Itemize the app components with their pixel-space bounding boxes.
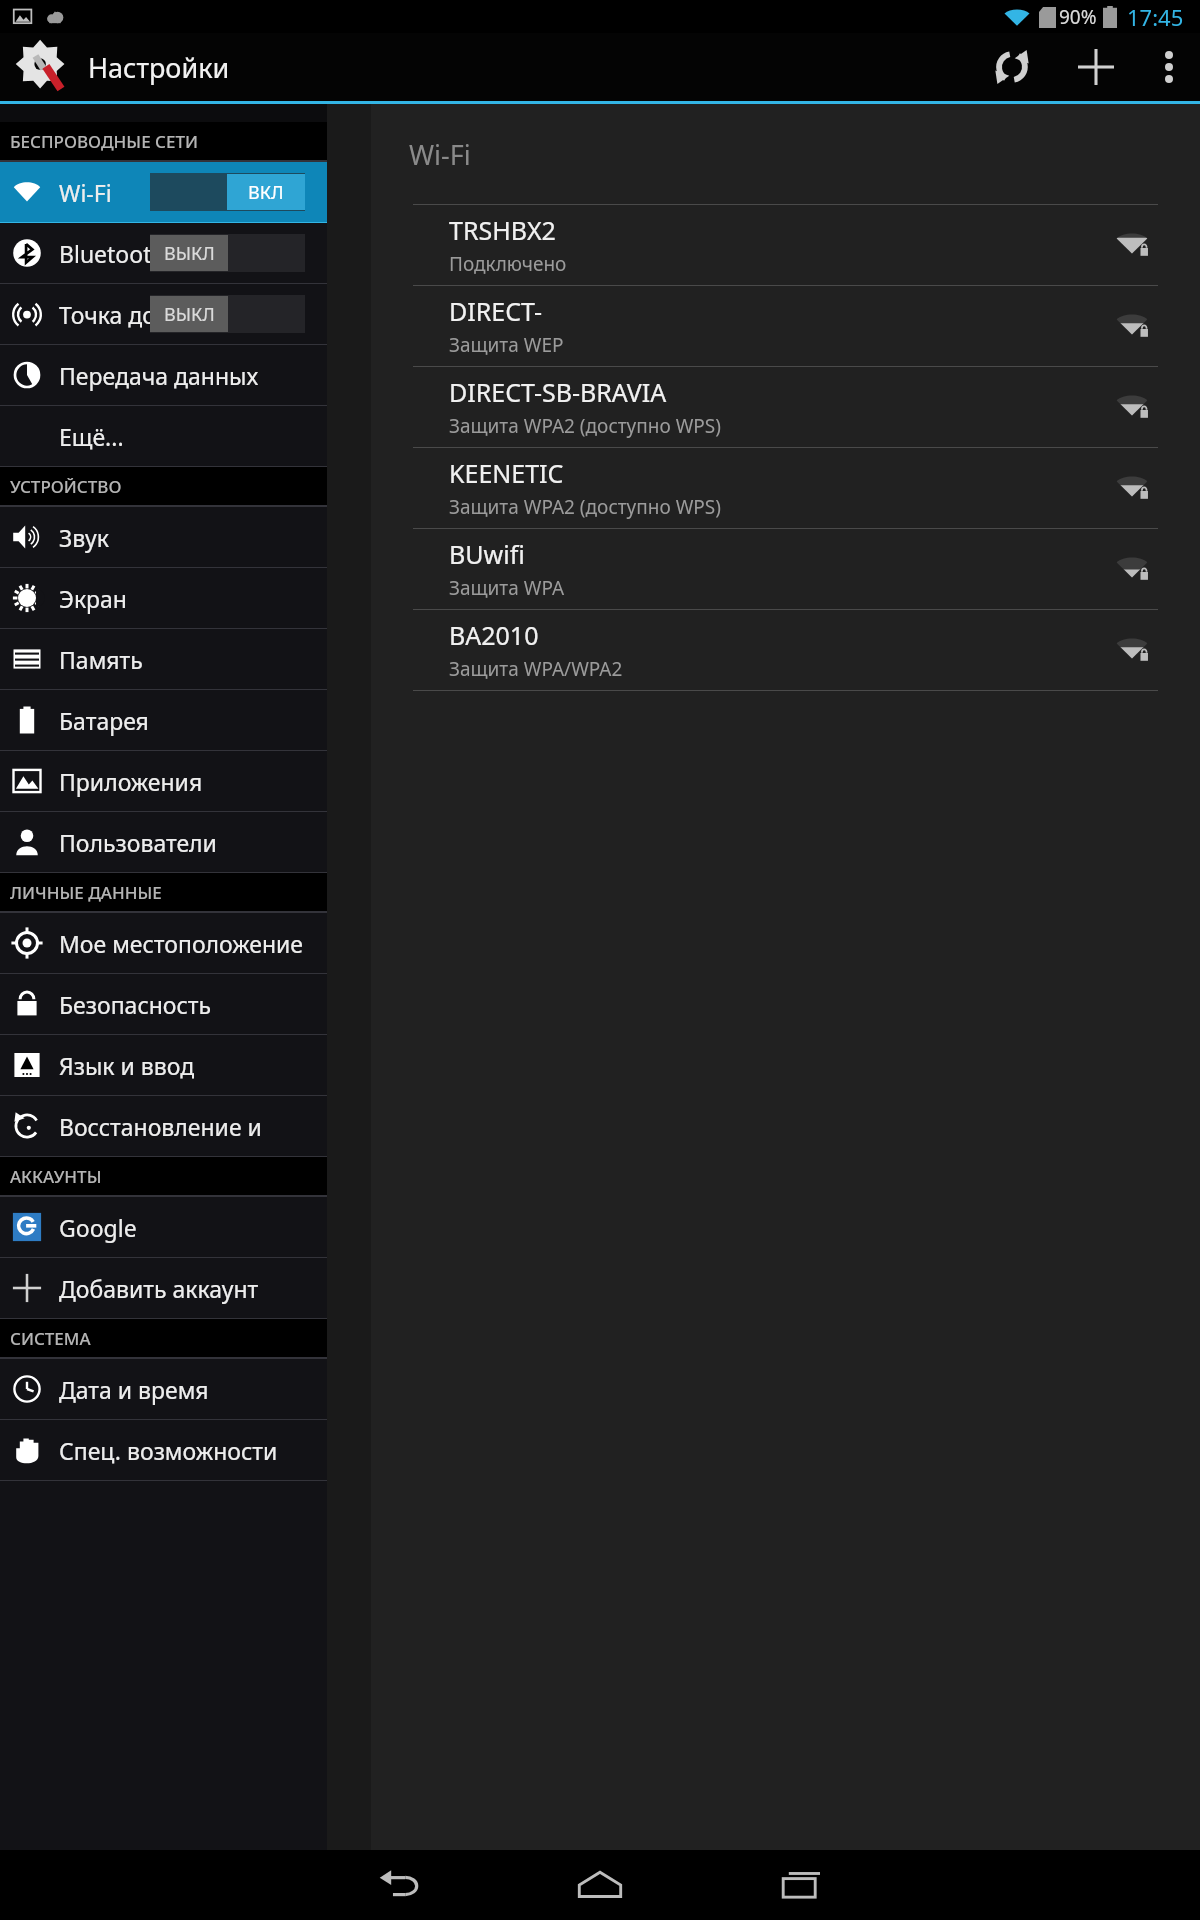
button[interactable]: Память	[0, 629, 327, 689]
button[interactable]: Батарея	[0, 690, 327, 750]
button[interactable]: Добавить аккаунт	[0, 1258, 327, 1318]
button[interactable]: ВЫКЛ	[150, 234, 305, 272]
button[interactable]: Синхронизация	[970, 33, 1054, 101]
button[interactable]: Мое местоположение	[0, 913, 327, 973]
button[interactable]: Назад	[300, 1850, 500, 1920]
staticText: 17:45	[1127, 2, 1184, 32]
button[interactable]: Недавние приложения	[700, 1850, 900, 1920]
staticText: Подключено	[449, 251, 567, 277]
staticText: Защита WEP	[449, 332, 564, 358]
staticText: Ещё...	[59, 421, 124, 452]
button[interactable]: Точка доступа	[0, 284, 327, 344]
button[interactable]: Язык и ввод	[0, 1035, 327, 1095]
staticText: Восстановление и сброс	[59, 1111, 327, 1142]
staticText: Защита WPA2 (доступно WPS)	[449, 413, 721, 439]
staticText: Передача данных	[59, 360, 259, 391]
button[interactable]: Безопасность	[0, 974, 327, 1034]
staticText: Bluetooth	[59, 238, 166, 269]
staticText: СИСТЕМА	[10, 1327, 91, 1350]
staticText: Защита WPA/WPA2	[449, 656, 623, 682]
staticText: Безопасность	[59, 989, 212, 1020]
button[interactable]: Дата и время	[0, 1359, 327, 1419]
staticText: Мое местоположение	[59, 928, 304, 959]
staticText: BA2010	[449, 618, 539, 652]
staticText: Защита WPA2 (доступно WPS)	[449, 494, 721, 520]
staticText: Приложения	[59, 766, 203, 797]
staticText: УСТРОЙСТВО	[10, 475, 122, 498]
button[interactable]: Добавить сеть	[1054, 33, 1138, 101]
staticText: DIRECT-	[449, 294, 542, 328]
staticText: Wi-Fi	[59, 177, 112, 208]
staticText: KEENETIC	[449, 456, 564, 490]
staticText: Пользователи	[59, 827, 217, 858]
staticText: ЛИЧНЫЕ ДАННЫЕ	[10, 881, 162, 904]
staticText: Язык и ввод	[59, 1050, 195, 1081]
button[interactable]: Пользователи	[0, 812, 327, 872]
staticText: Защита WPA	[449, 575, 565, 601]
staticText: ВКЛ	[248, 180, 284, 205]
button[interactable]: KEENETIC	[371, 448, 1200, 528]
button[interactable]: Приложения	[0, 751, 327, 811]
staticText: Google	[59, 1212, 137, 1243]
button[interactable]: Bluetooth	[0, 223, 327, 283]
button[interactable]: BA2010	[371, 610, 1200, 690]
button[interactable]: ВЫКЛ	[150, 295, 305, 333]
button[interactable]: Восстановление и сброс	[0, 1096, 327, 1156]
staticText: БЕСПРОВОДНЫЕ СЕТИ	[10, 130, 198, 153]
staticText: Спец. возможности	[59, 1435, 278, 1466]
button[interactable]: Экран	[0, 568, 327, 628]
staticText: 90%	[1059, 4, 1097, 30]
button[interactable]: ВКЛ	[150, 173, 305, 211]
staticText: TRSHBX2	[449, 213, 556, 247]
staticText: АККАУНТЫ	[10, 1165, 102, 1188]
staticText: DIRECT-SB-BRAVIA	[449, 375, 667, 409]
button[interactable]: BUwifi	[371, 529, 1200, 609]
staticText: Дата и время	[59, 1374, 209, 1405]
button[interactable]: TRSHBX2	[371, 205, 1200, 285]
button[interactable]: DIRECT-SB-BRAVIA	[371, 367, 1200, 447]
button[interactable]: Wi-Fi	[0, 162, 327, 222]
staticText: Настройки	[88, 49, 230, 86]
button[interactable]: Звук	[0, 507, 327, 567]
button[interactable]: Передача данных	[0, 345, 327, 405]
button[interactable]: DIRECT-	[371, 286, 1200, 366]
staticText: Память	[59, 644, 143, 675]
button[interactable]: Ещё	[1138, 33, 1200, 101]
button[interactable]: Главный экран	[500, 1850, 700, 1920]
staticText: BUwifi	[449, 537, 525, 571]
staticText: Wi-Fi	[409, 136, 471, 173]
staticText: Звук	[59, 522, 109, 553]
staticText: ВЫКЛ	[164, 302, 215, 327]
button[interactable]: Ещё...	[0, 406, 327, 466]
staticText: ВЫКЛ	[164, 241, 215, 266]
button[interactable]: Спец. возможности	[0, 1420, 327, 1480]
button[interactable]: Google	[0, 1197, 327, 1257]
staticText: Экран	[59, 583, 127, 614]
staticText: Добавить аккаунт	[59, 1273, 259, 1304]
staticText: Точка доступа	[59, 299, 217, 330]
staticText: Батарея	[59, 705, 149, 736]
